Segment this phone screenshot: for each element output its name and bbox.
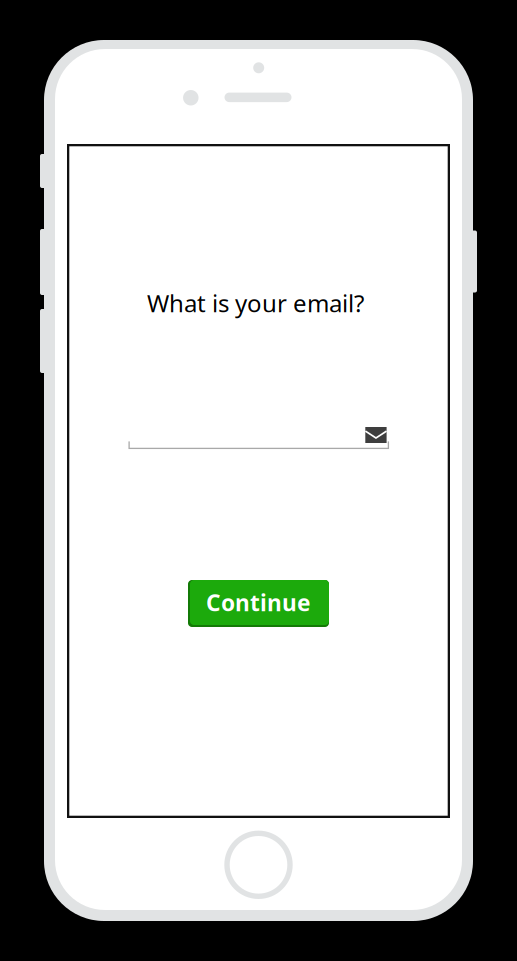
button[interactable]: Email address [128,422,389,449]
staticText: What is your email? [147,287,364,319]
staticText: Continue [206,587,311,617]
button[interactable]: Continue [188,580,329,627]
